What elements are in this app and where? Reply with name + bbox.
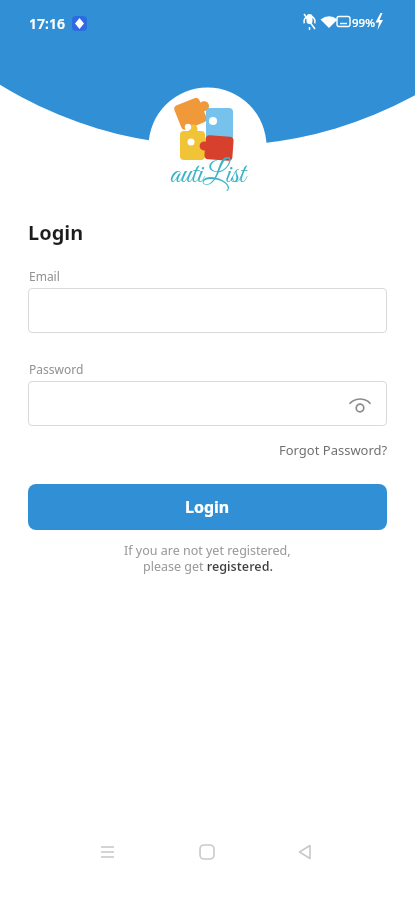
staticText: 17:16 — [29, 14, 65, 33]
staticText: Email — [29, 268, 60, 284]
staticText: Password — [29, 361, 84, 377]
button[interactable]: Login — [28, 484, 387, 530]
button[interactable] — [28, 381, 387, 426]
staticText: autiList — [170, 156, 246, 194]
button[interactable] — [28, 288, 387, 333]
staticText: Login — [28, 219, 84, 246]
button[interactable]: please get registered. — [143, 558, 273, 575]
staticText: If you are not yet registered, — [124, 542, 291, 559]
staticText: Login — [185, 496, 230, 518]
staticText: 99% — [352, 15, 375, 31]
button[interactable]: Forgot Password? — [279, 441, 388, 459]
